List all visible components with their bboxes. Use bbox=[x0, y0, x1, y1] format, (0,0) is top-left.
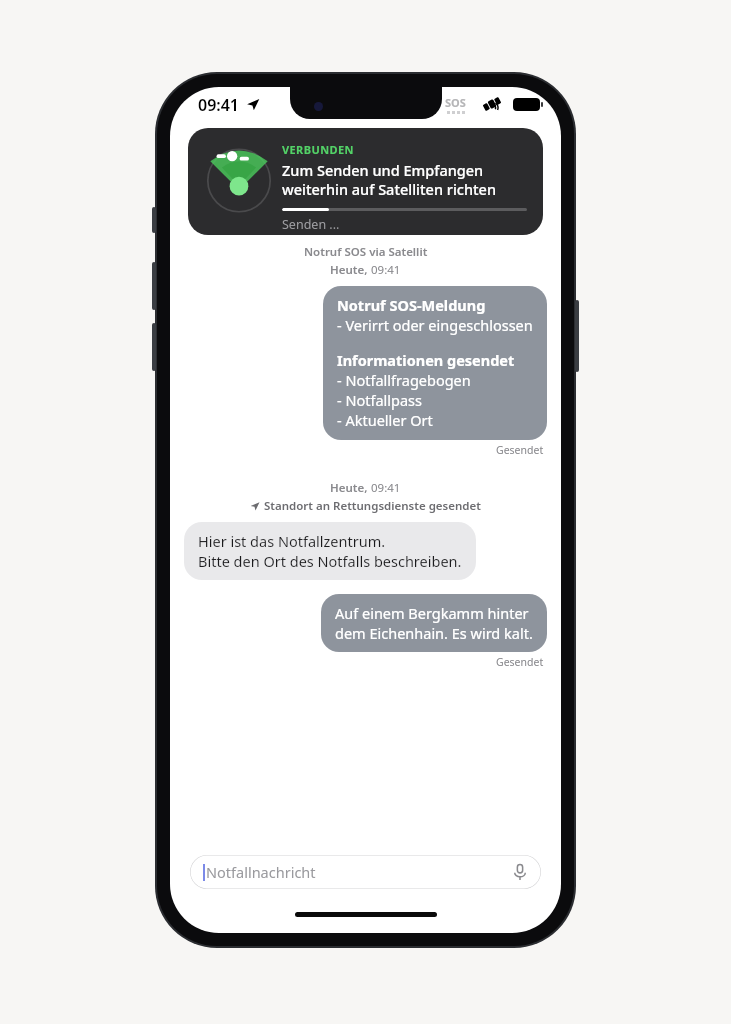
staticText: Gesendet bbox=[496, 443, 544, 457]
staticText: Heute, bbox=[330, 262, 371, 278]
button[interactable]: Hier ist das Notfallzentrum. Bitte den O… bbox=[184, 522, 476, 580]
staticText: - Notfallfragebogen - Notfallpass - Aktu… bbox=[337, 370, 471, 430]
staticText: 09:41 bbox=[371, 480, 401, 496]
staticText: Heute, bbox=[330, 480, 371, 496]
staticText: SOS bbox=[445, 95, 466, 110]
staticText: Notruf SOS via Satellit bbox=[304, 244, 428, 260]
button[interactable]: Notfallnachricht bbox=[190, 855, 541, 889]
staticText: Standort an Rettungsdienste gesendet bbox=[264, 498, 481, 514]
staticText: VERBUNDEN bbox=[282, 142, 354, 157]
staticText: Hier ist das Notfallzentrum. Bitte den O… bbox=[198, 531, 462, 571]
button[interactable]: VERBUNDEN bbox=[188, 128, 543, 235]
staticText: Auf einem Bergkamm hinter dem Eichenhain… bbox=[335, 603, 533, 643]
staticText: 09:41 bbox=[371, 262, 401, 278]
staticText: - Verirrt oder eingeschlossen bbox=[337, 315, 533, 335]
staticText: Zum Senden und Empfangen weiterhin auf S… bbox=[282, 160, 497, 199]
staticText: Notfallnachricht bbox=[206, 862, 316, 882]
staticText: Notruf SOS-Meldung bbox=[337, 295, 486, 315]
button[interactable]: Diktieren bbox=[509, 861, 531, 883]
staticText: 09:41 bbox=[198, 94, 240, 116]
button[interactable]: Auf einem Bergkamm hinter dem Eichenhain… bbox=[321, 594, 547, 652]
staticText: Senden ... bbox=[282, 216, 340, 233]
staticText: Gesendet bbox=[496, 655, 544, 669]
button[interactable]: Notruf SOS-Meldung bbox=[323, 286, 547, 440]
staticText: Informationen gesendet bbox=[337, 350, 515, 370]
